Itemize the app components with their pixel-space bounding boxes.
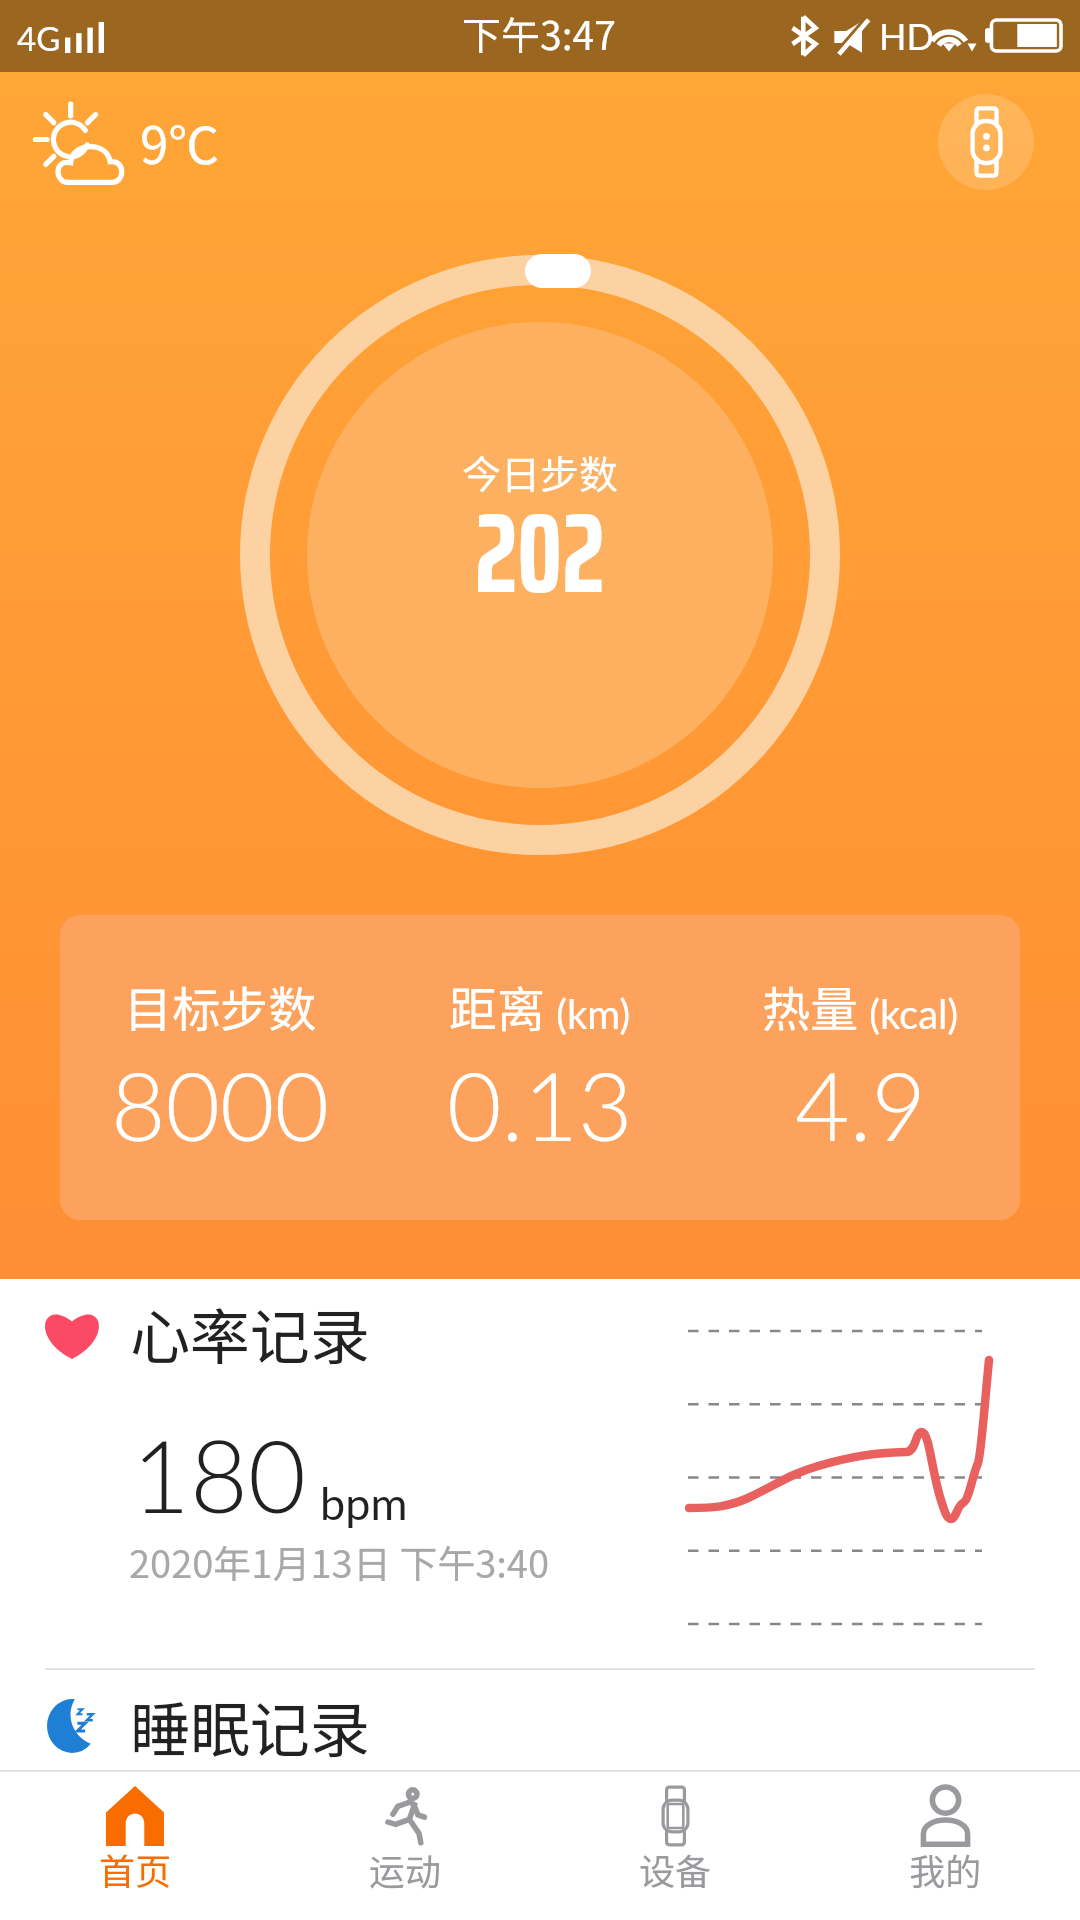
staticText: 4G (17, 18, 61, 58)
button[interactable]: 首页 (0, 1772, 270, 1920)
button[interactable]: 运动 (270, 1772, 540, 1920)
staticText: 2020年1月13日 下午3:40 (129, 1534, 549, 1589)
staticText: 9℃ (140, 105, 220, 179)
staticText: 目标步数 (124, 971, 317, 1041)
staticText: 心率记录 (130, 1289, 370, 1376)
button[interactable]: My band (938, 94, 1034, 190)
staticText: 距离 (449, 971, 546, 1041)
button[interactable]: 设备 (540, 1772, 810, 1920)
staticText: 下午3:47 (462, 5, 616, 61)
staticText: 热量 (762, 971, 859, 1041)
staticText: 今日步数 (462, 444, 619, 500)
staticText: 我的 (909, 1843, 982, 1895)
staticText: 首页 (99, 1843, 172, 1895)
button[interactable]: 睡眠记录 (0, 1670, 1080, 1770)
button[interactable]: 目标步数 (60, 915, 1020, 1220)
staticText: 180 (132, 1414, 306, 1534)
staticText: HD (879, 14, 934, 57)
staticText: 0.13 (447, 1048, 633, 1161)
staticText: (km) (546, 990, 631, 1038)
button[interactable]: 我的 (810, 1772, 1080, 1920)
staticText: 运动 (369, 1843, 442, 1895)
staticText: bpm (320, 1476, 408, 1530)
staticText: 睡眠记录 (130, 1682, 370, 1769)
button[interactable]: 心率记录 (0, 1279, 1080, 1670)
staticText: 8000 (111, 1048, 330, 1161)
staticText: 202 (475, 465, 605, 641)
staticText: (kcal) (859, 990, 959, 1038)
staticText: 4.9 (795, 1048, 926, 1161)
staticText: 设备 (639, 1843, 712, 1895)
